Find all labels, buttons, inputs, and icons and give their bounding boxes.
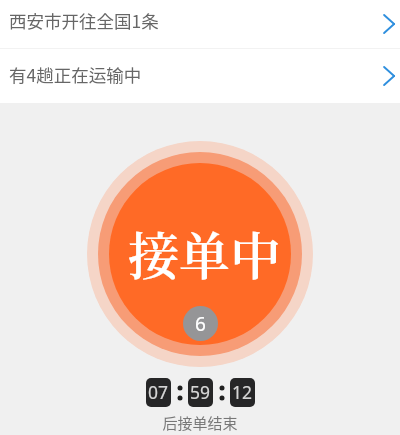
staticText: 6 [195, 311, 206, 337]
button[interactable]: 接单中 [87, 141, 313, 367]
staticText: 接单中 [128, 216, 282, 289]
staticText: 有4趟正在运输中 [9, 62, 142, 87]
button[interactable]: 6 pending orders [183, 306, 218, 341]
staticText: 59 [190, 380, 211, 404]
staticText: 西安市开往全国1条 [9, 8, 159, 33]
button[interactable]: 西安市开往全国1条 [0, 0, 400, 48]
staticText: 12 [232, 380, 253, 404]
button[interactable]: 有4趟正在运输中 [0, 49, 400, 103]
staticText: 后接单结束 [162, 412, 238, 434]
staticText: 07 [148, 380, 169, 404]
